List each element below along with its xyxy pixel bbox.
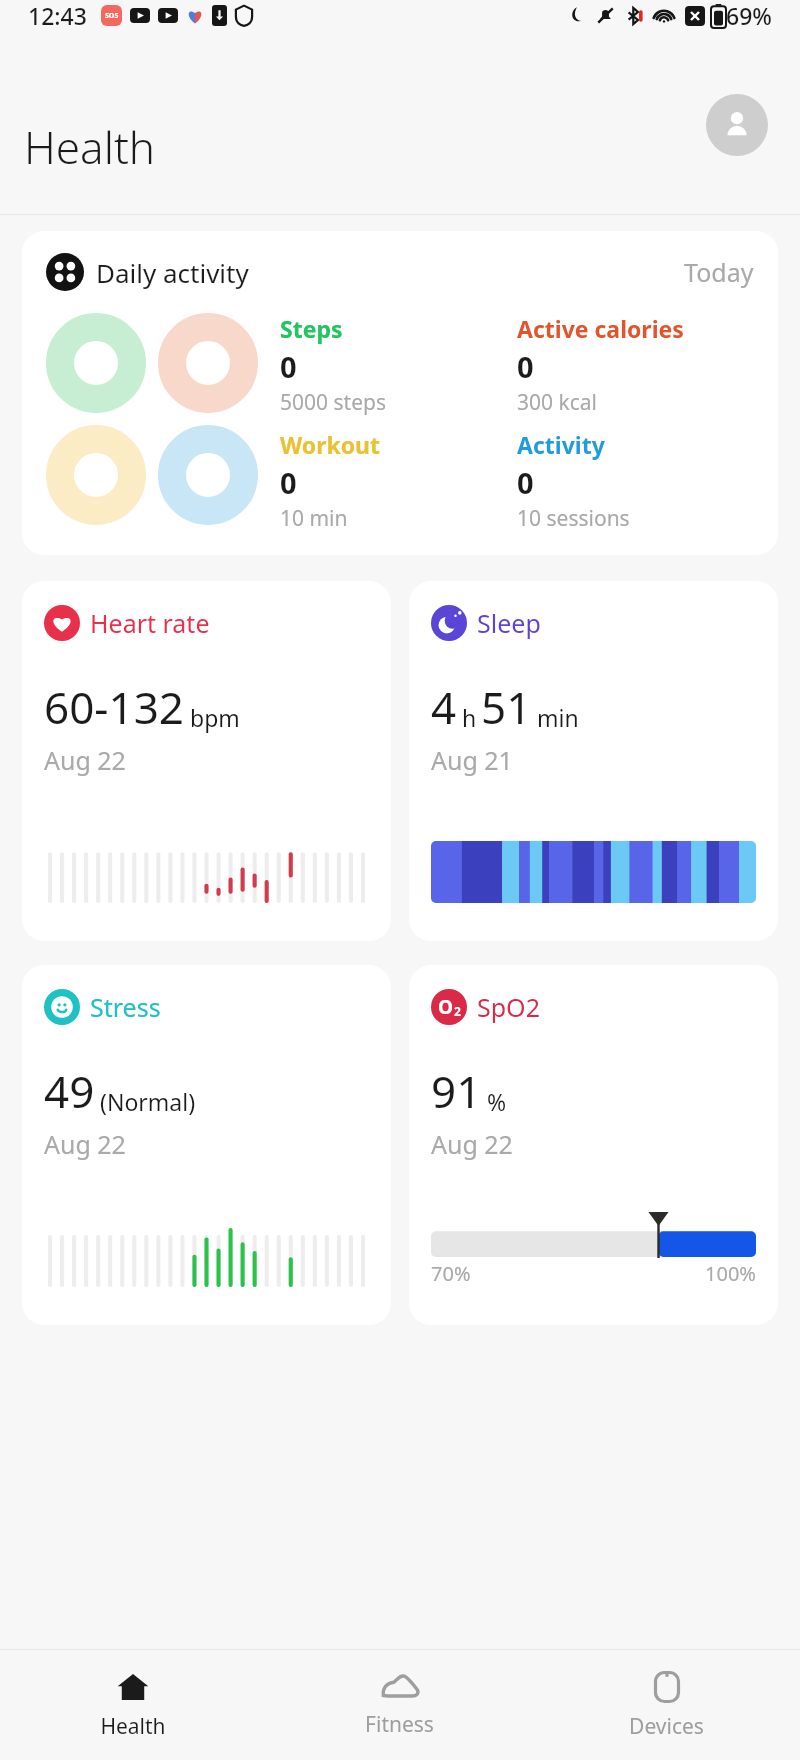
staticText: 70% bbox=[431, 1260, 471, 1287]
staticText: 10 sessions bbox=[517, 504, 630, 533]
staticText: 100% bbox=[705, 1260, 756, 1287]
staticText: min bbox=[537, 702, 579, 733]
staticText: 0 bbox=[280, 347, 297, 386]
staticText: Aug 22 bbox=[44, 743, 126, 777]
staticText: Health bbox=[24, 117, 156, 177]
staticText: SOS bbox=[105, 11, 119, 21]
staticText: h bbox=[462, 702, 477, 733]
staticText: 69% bbox=[726, 0, 772, 31]
staticText: 0 bbox=[280, 463, 297, 502]
staticText: Active calories bbox=[517, 313, 684, 344]
staticText: 51 bbox=[481, 677, 532, 737]
button[interactable]: Sleep bbox=[409, 581, 778, 941]
staticText: Sleep bbox=[477, 606, 541, 640]
staticText: Aug 21 bbox=[431, 743, 513, 777]
staticText: Devices bbox=[629, 1712, 704, 1741]
staticText: 0 bbox=[517, 463, 534, 502]
button[interactable]: Profile bbox=[706, 94, 768, 156]
staticText: Health bbox=[100, 1712, 166, 1741]
staticText: Workout bbox=[280, 429, 381, 460]
button[interactable]: Daily activity bbox=[22, 231, 778, 555]
button[interactable]: Fitness bbox=[266, 1650, 533, 1760]
staticText: Today bbox=[684, 255, 754, 289]
staticText: O bbox=[438, 994, 454, 1020]
staticText: Steps bbox=[280, 313, 343, 344]
staticText: 5000 steps bbox=[280, 388, 386, 417]
button[interactable]: O bbox=[409, 965, 778, 1325]
button[interactable]: Devices bbox=[533, 1650, 800, 1760]
staticText: 0 bbox=[517, 347, 534, 386]
staticText: 60-132 bbox=[44, 677, 185, 737]
staticText: (Normal) bbox=[100, 1086, 196, 1117]
staticText: 300 kcal bbox=[517, 388, 597, 417]
staticText: 49 bbox=[44, 1061, 95, 1121]
staticText: 10 min bbox=[280, 504, 348, 533]
staticText: Heart rate bbox=[90, 606, 210, 640]
staticText: bpm bbox=[190, 702, 240, 733]
staticText: Aug 22 bbox=[431, 1127, 513, 1161]
staticText: 91 bbox=[431, 1061, 482, 1121]
button[interactable]: Heart rate bbox=[22, 581, 391, 941]
staticText: Activity bbox=[517, 429, 605, 460]
staticText: Fitness bbox=[365, 1710, 434, 1739]
button[interactable]: Stress bbox=[22, 965, 391, 1325]
staticText: 2 bbox=[454, 1003, 461, 1019]
staticText: % bbox=[487, 1086, 507, 1117]
staticText: Daily activity bbox=[96, 255, 249, 290]
staticText: 12:43 bbox=[28, 0, 87, 31]
staticText: Stress bbox=[90, 990, 161, 1024]
staticText: SpO2 bbox=[477, 990, 540, 1024]
staticText: Aug 22 bbox=[44, 1127, 126, 1161]
button[interactable]: Health bbox=[0, 1650, 266, 1760]
staticText: 4 bbox=[431, 677, 457, 737]
